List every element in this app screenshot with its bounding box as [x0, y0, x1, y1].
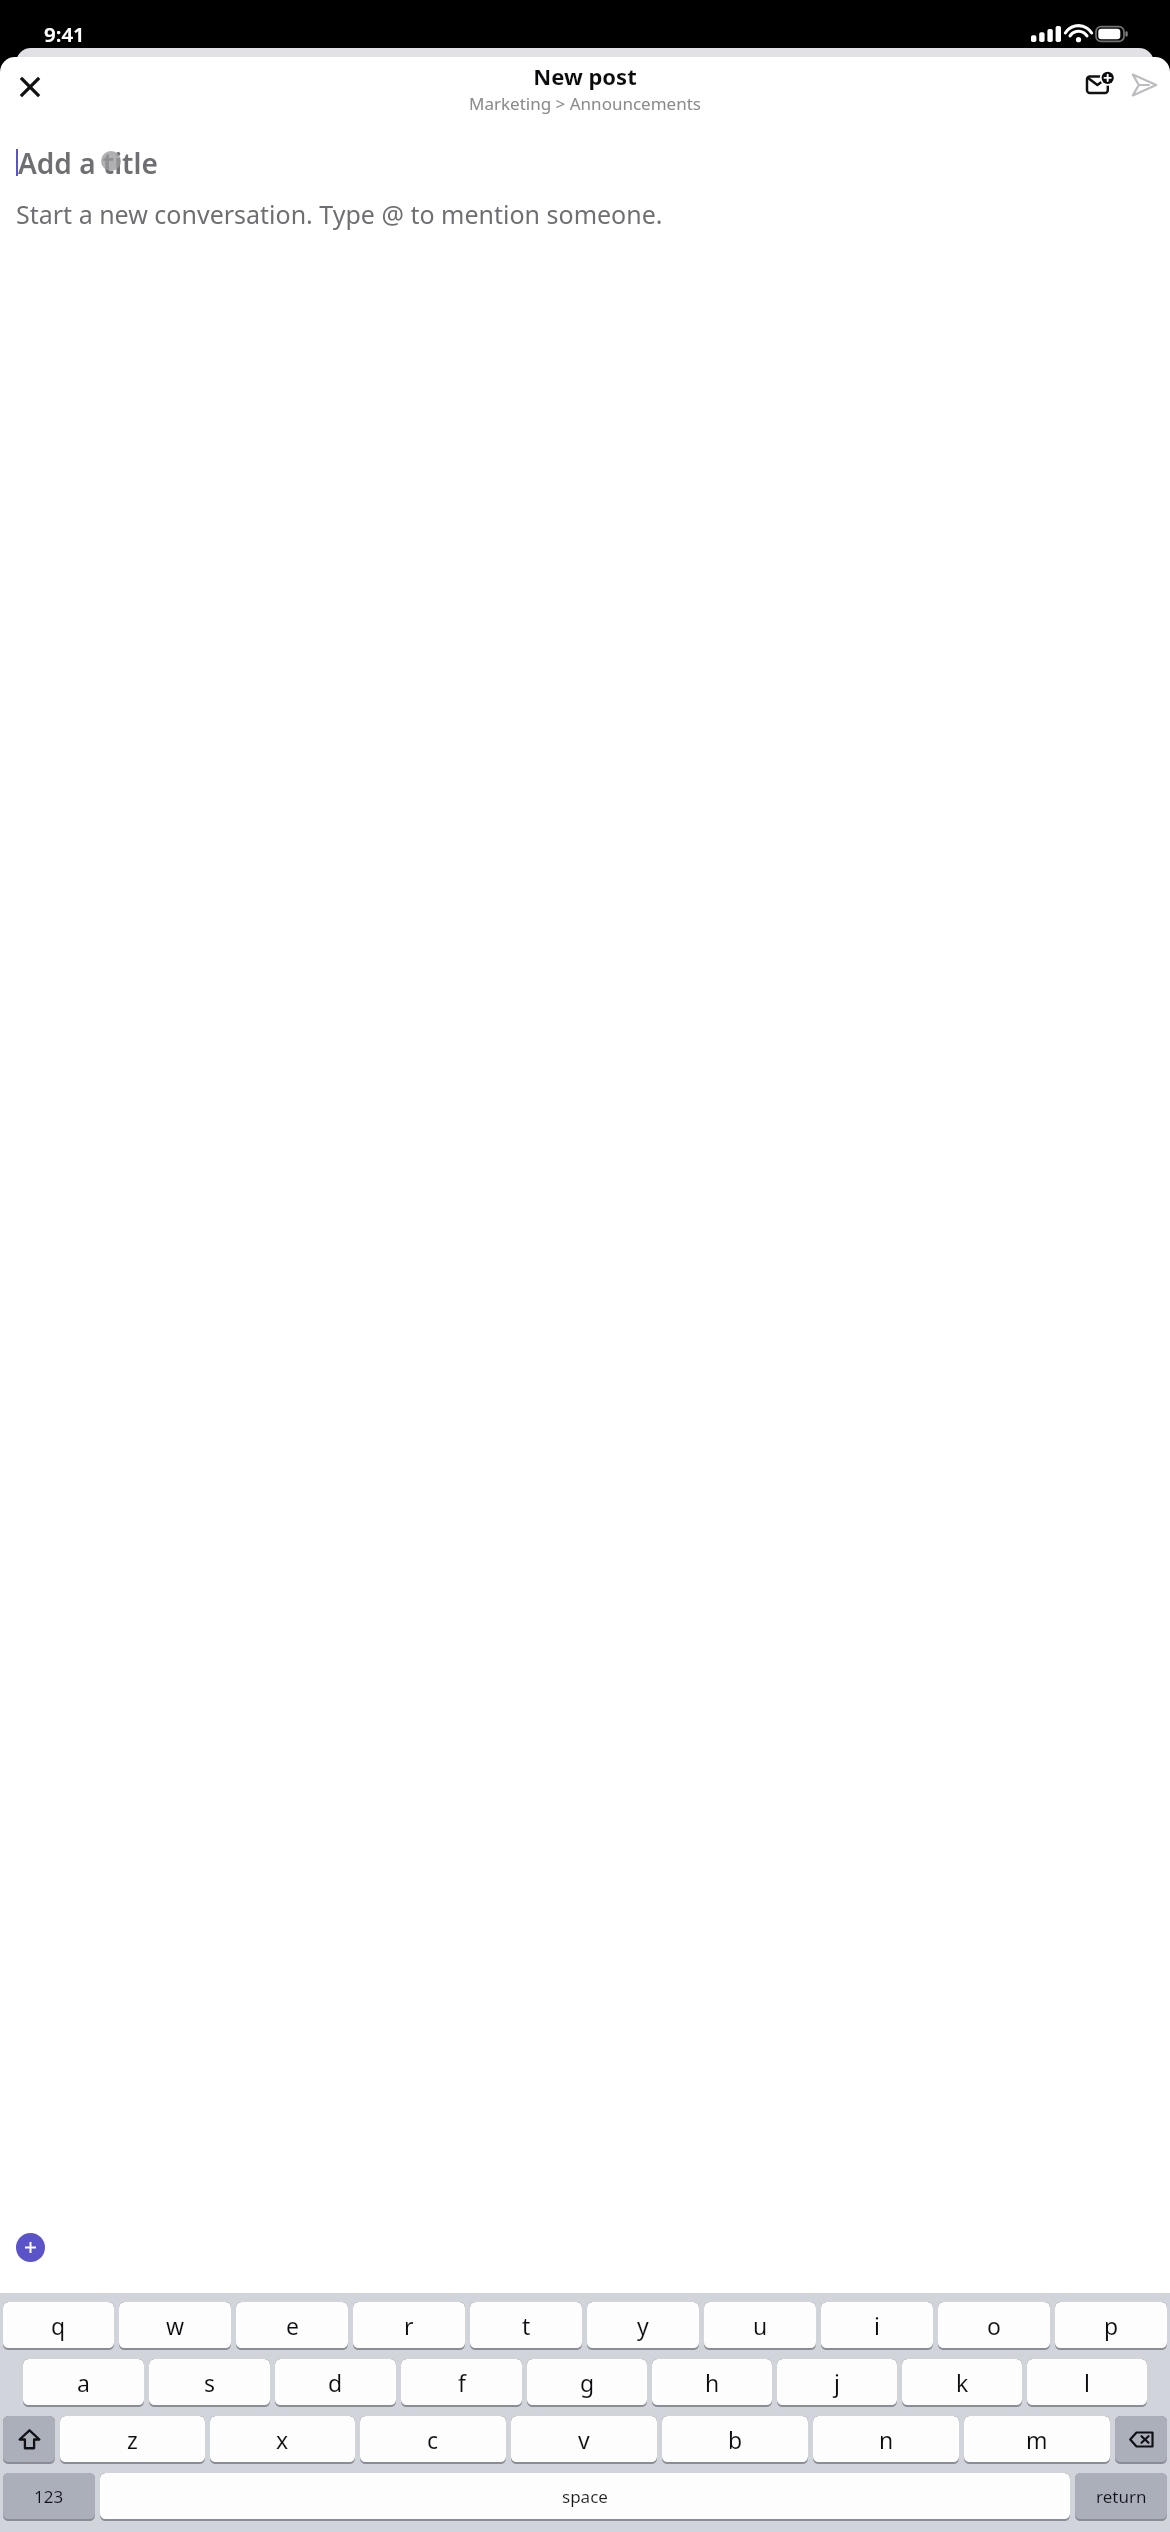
staticText: Marketing > Announcements — [469, 92, 701, 115]
button[interactable]: Key — [1115, 2416, 1167, 2464]
button[interactable]: return — [1075, 2473, 1167, 2521]
staticText: return — [1096, 2485, 1147, 2508]
staticText: h — [705, 2367, 720, 2398]
staticText: New post — [533, 61, 637, 91]
staticText: Start a new conversation. Type @ to ment… — [16, 197, 1154, 231]
staticText: x — [276, 2424, 289, 2455]
staticText: q — [51, 2310, 66, 2341]
staticText: v — [578, 2424, 590, 2455]
button[interactable]: Add a title — [18, 144, 158, 182]
staticText: f — [458, 2367, 466, 2398]
button[interactable]: o — [938, 2302, 1050, 2350]
button[interactable]: Add attachment — [16, 2233, 45, 2262]
button[interactable]: p — [1055, 2302, 1167, 2350]
staticText: 9:41 — [44, 20, 85, 48]
button[interactable]: d — [275, 2359, 396, 2407]
staticText: d — [328, 2367, 343, 2398]
button[interactable]: s — [149, 2359, 270, 2407]
button[interactable]: Close — [8, 65, 52, 109]
staticText: i — [874, 2310, 880, 2341]
button[interactable]: i — [821, 2302, 933, 2350]
staticText: r — [404, 2310, 414, 2341]
button[interactable]: Key — [3, 2416, 55, 2464]
staticText: o — [987, 2310, 1001, 2341]
button[interactable]: 123 — [3, 2473, 95, 2521]
button[interactable]: u — [704, 2302, 816, 2350]
staticText: p — [1104, 2310, 1119, 2341]
button[interactable]: c — [360, 2416, 506, 2464]
button[interactable]: n — [813, 2416, 959, 2464]
staticText: y — [637, 2310, 649, 2341]
staticText: u — [753, 2310, 768, 2341]
staticText: 123 — [34, 2485, 64, 2508]
staticText: t — [522, 2310, 531, 2341]
button[interactable]: z — [60, 2416, 205, 2464]
staticText: s — [204, 2367, 216, 2398]
button[interactable]: t — [470, 2302, 582, 2350]
staticText: m — [1026, 2424, 1048, 2455]
staticText: k — [956, 2367, 969, 2398]
staticText: c — [427, 2424, 439, 2455]
button[interactable]: m — [964, 2416, 1110, 2464]
button[interactable]: v — [511, 2416, 657, 2464]
button[interactable]: f — [401, 2359, 522, 2407]
staticText: g — [580, 2367, 595, 2398]
staticText: space — [562, 2485, 608, 2508]
button[interactable]: q — [3, 2302, 114, 2350]
button[interactable]: a — [23, 2359, 144, 2407]
button[interactable]: b — [662, 2416, 808, 2464]
button[interactable]: g — [527, 2359, 647, 2407]
staticText: b — [728, 2424, 743, 2455]
button[interactable]: Send — [1122, 63, 1166, 107]
button[interactable]: r — [353, 2302, 465, 2350]
button[interactable]: h — [652, 2359, 772, 2407]
staticText: l — [1084, 2367, 1090, 2398]
button[interactable]: New message — [1078, 63, 1122, 107]
staticText: e — [286, 2310, 299, 2341]
button[interactable]: j — [777, 2359, 897, 2407]
button[interactable]: w — [119, 2302, 231, 2350]
button[interactable]: k — [902, 2359, 1022, 2407]
staticText: a — [77, 2367, 90, 2398]
button[interactable]: e — [236, 2302, 348, 2350]
other: Backspace — [1129, 2427, 1154, 2452]
button[interactable]: space — [100, 2473, 1070, 2521]
staticText: j — [834, 2367, 840, 2398]
staticText: z — [127, 2424, 138, 2455]
staticText: w — [166, 2310, 185, 2341]
button[interactable]: x — [210, 2416, 355, 2464]
button[interactable]: l — [1027, 2359, 1147, 2407]
button[interactable]: y — [587, 2302, 699, 2350]
other: Shift — [18, 2428, 41, 2451]
staticText: n — [879, 2424, 894, 2455]
